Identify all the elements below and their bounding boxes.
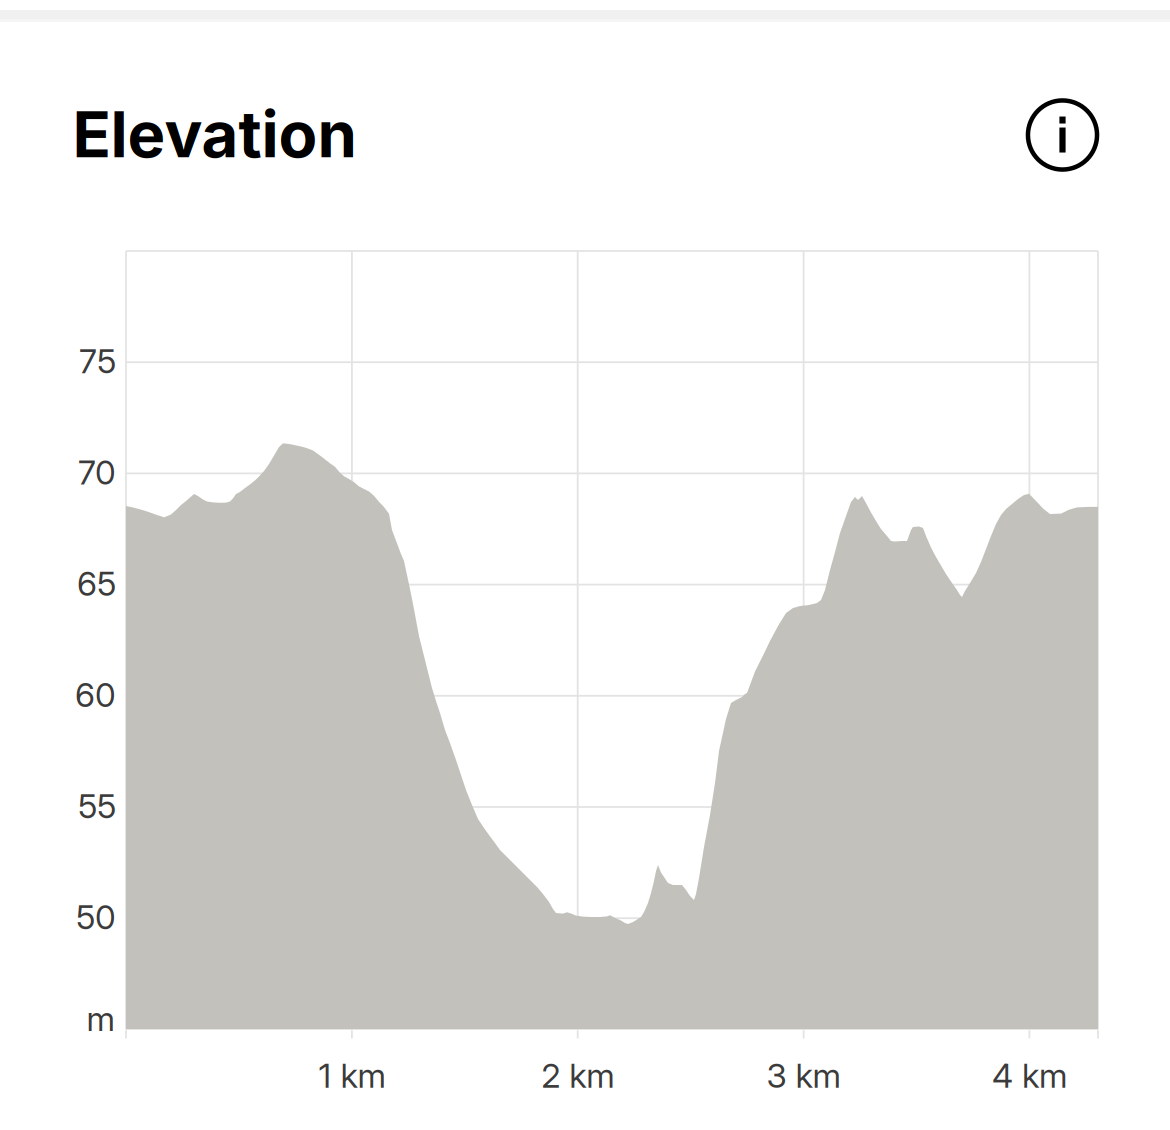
staticText: Elevation <box>72 96 356 173</box>
staticText: 3 km <box>767 1055 841 1096</box>
staticText: 60 <box>75 675 116 715</box>
staticText: 65 <box>77 563 116 604</box>
button[interactable]: About elevation <box>1014 87 1110 183</box>
staticText: 2 km <box>541 1055 614 1096</box>
staticText: 1 km <box>318 1055 385 1096</box>
staticText: 4 km <box>992 1055 1067 1096</box>
staticText: 55 <box>78 786 116 826</box>
staticText: 70 <box>78 452 116 492</box>
staticText: m <box>86 999 114 1039</box>
staticText: 75 <box>79 341 116 381</box>
staticText: 50 <box>76 897 116 937</box>
